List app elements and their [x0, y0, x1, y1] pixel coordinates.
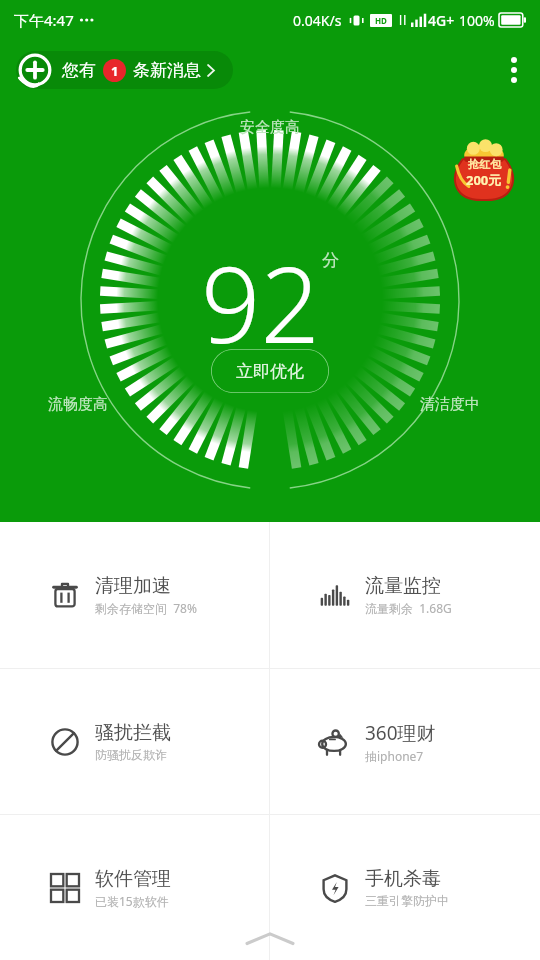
- button[interactable]: 您有: [16, 51, 233, 89]
- staticText: 三重引擎防护中: [365, 893, 449, 908]
- button[interactable]: Red packet promotion: [446, 132, 522, 200]
- staticText: 1: [111, 62, 119, 80]
- staticText: 200元: [466, 171, 502, 189]
- staticText: 100%: [459, 11, 495, 30]
- button[interactable]: 软件管理: [0, 815, 269, 960]
- button[interactable]: 立即优化: [211, 349, 329, 393]
- staticText: 360理财: [365, 720, 436, 746]
- staticText: 流量剩余 1.68G: [365, 600, 452, 616]
- button[interactable]: 流量监控: [270, 522, 540, 668]
- staticText: 防骚扰反欺诈: [95, 747, 167, 762]
- staticText: 软件管理: [95, 867, 171, 891]
- staticText: 下午4:47: [14, 10, 74, 30]
- staticText: 手机杀毒: [365, 867, 441, 891]
- staticText: 骚扰拦截: [95, 721, 171, 745]
- staticText: 92: [201, 232, 320, 374]
- staticText: 您有: [62, 60, 96, 81]
- staticText: 条新消息: [133, 60, 201, 81]
- button[interactable]: Expand: [0, 918, 540, 960]
- staticText: 0.04K/s: [293, 11, 342, 30]
- button[interactable]: 骚扰拦截: [0, 669, 269, 814]
- button[interactable]: 清理加速: [0, 522, 269, 668]
- staticText: 已装15款软件: [95, 893, 169, 909]
- staticText: 清理加速: [95, 574, 171, 598]
- staticText: 流量监控: [365, 574, 441, 598]
- staticText: 抽iphone7: [365, 748, 424, 764]
- staticText: HD: [375, 15, 387, 26]
- staticText: 4G+: [428, 11, 455, 30]
- staticText: 立即优化: [236, 361, 304, 382]
- button[interactable]: More options: [488, 44, 540, 96]
- button[interactable]: 360理财: [270, 669, 540, 814]
- staticText: 清洁度中: [420, 395, 480, 414]
- staticText: 流畅度高: [48, 395, 108, 414]
- staticText: 安全度高: [240, 118, 300, 137]
- staticText: 抢红包: [468, 157, 501, 171]
- button[interactable]: 手机杀毒: [270, 815, 540, 960]
- staticText: 剩余存储空间 78%: [95, 600, 197, 616]
- staticText: 分: [322, 250, 339, 271]
